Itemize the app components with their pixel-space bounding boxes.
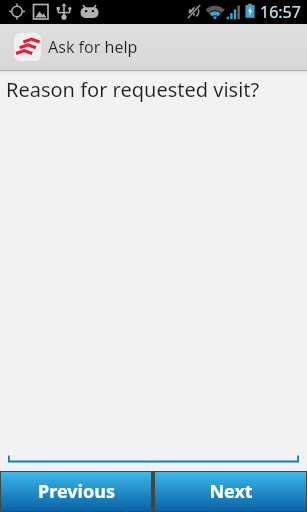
button[interactable]: Ask for help bbox=[0, 24, 148, 70]
button[interactable]: Reason text field bbox=[0, 103, 307, 471]
staticText: Next bbox=[209, 479, 253, 504]
staticText: Previous bbox=[38, 479, 115, 504]
button[interactable]: Next bbox=[155, 472, 306, 511]
staticText: Ask for help bbox=[48, 36, 138, 58]
staticText: 16:57 bbox=[260, 1, 301, 23]
staticText: Reason for requested visit? bbox=[6, 76, 260, 103]
button[interactable]: Previous bbox=[1, 472, 151, 511]
